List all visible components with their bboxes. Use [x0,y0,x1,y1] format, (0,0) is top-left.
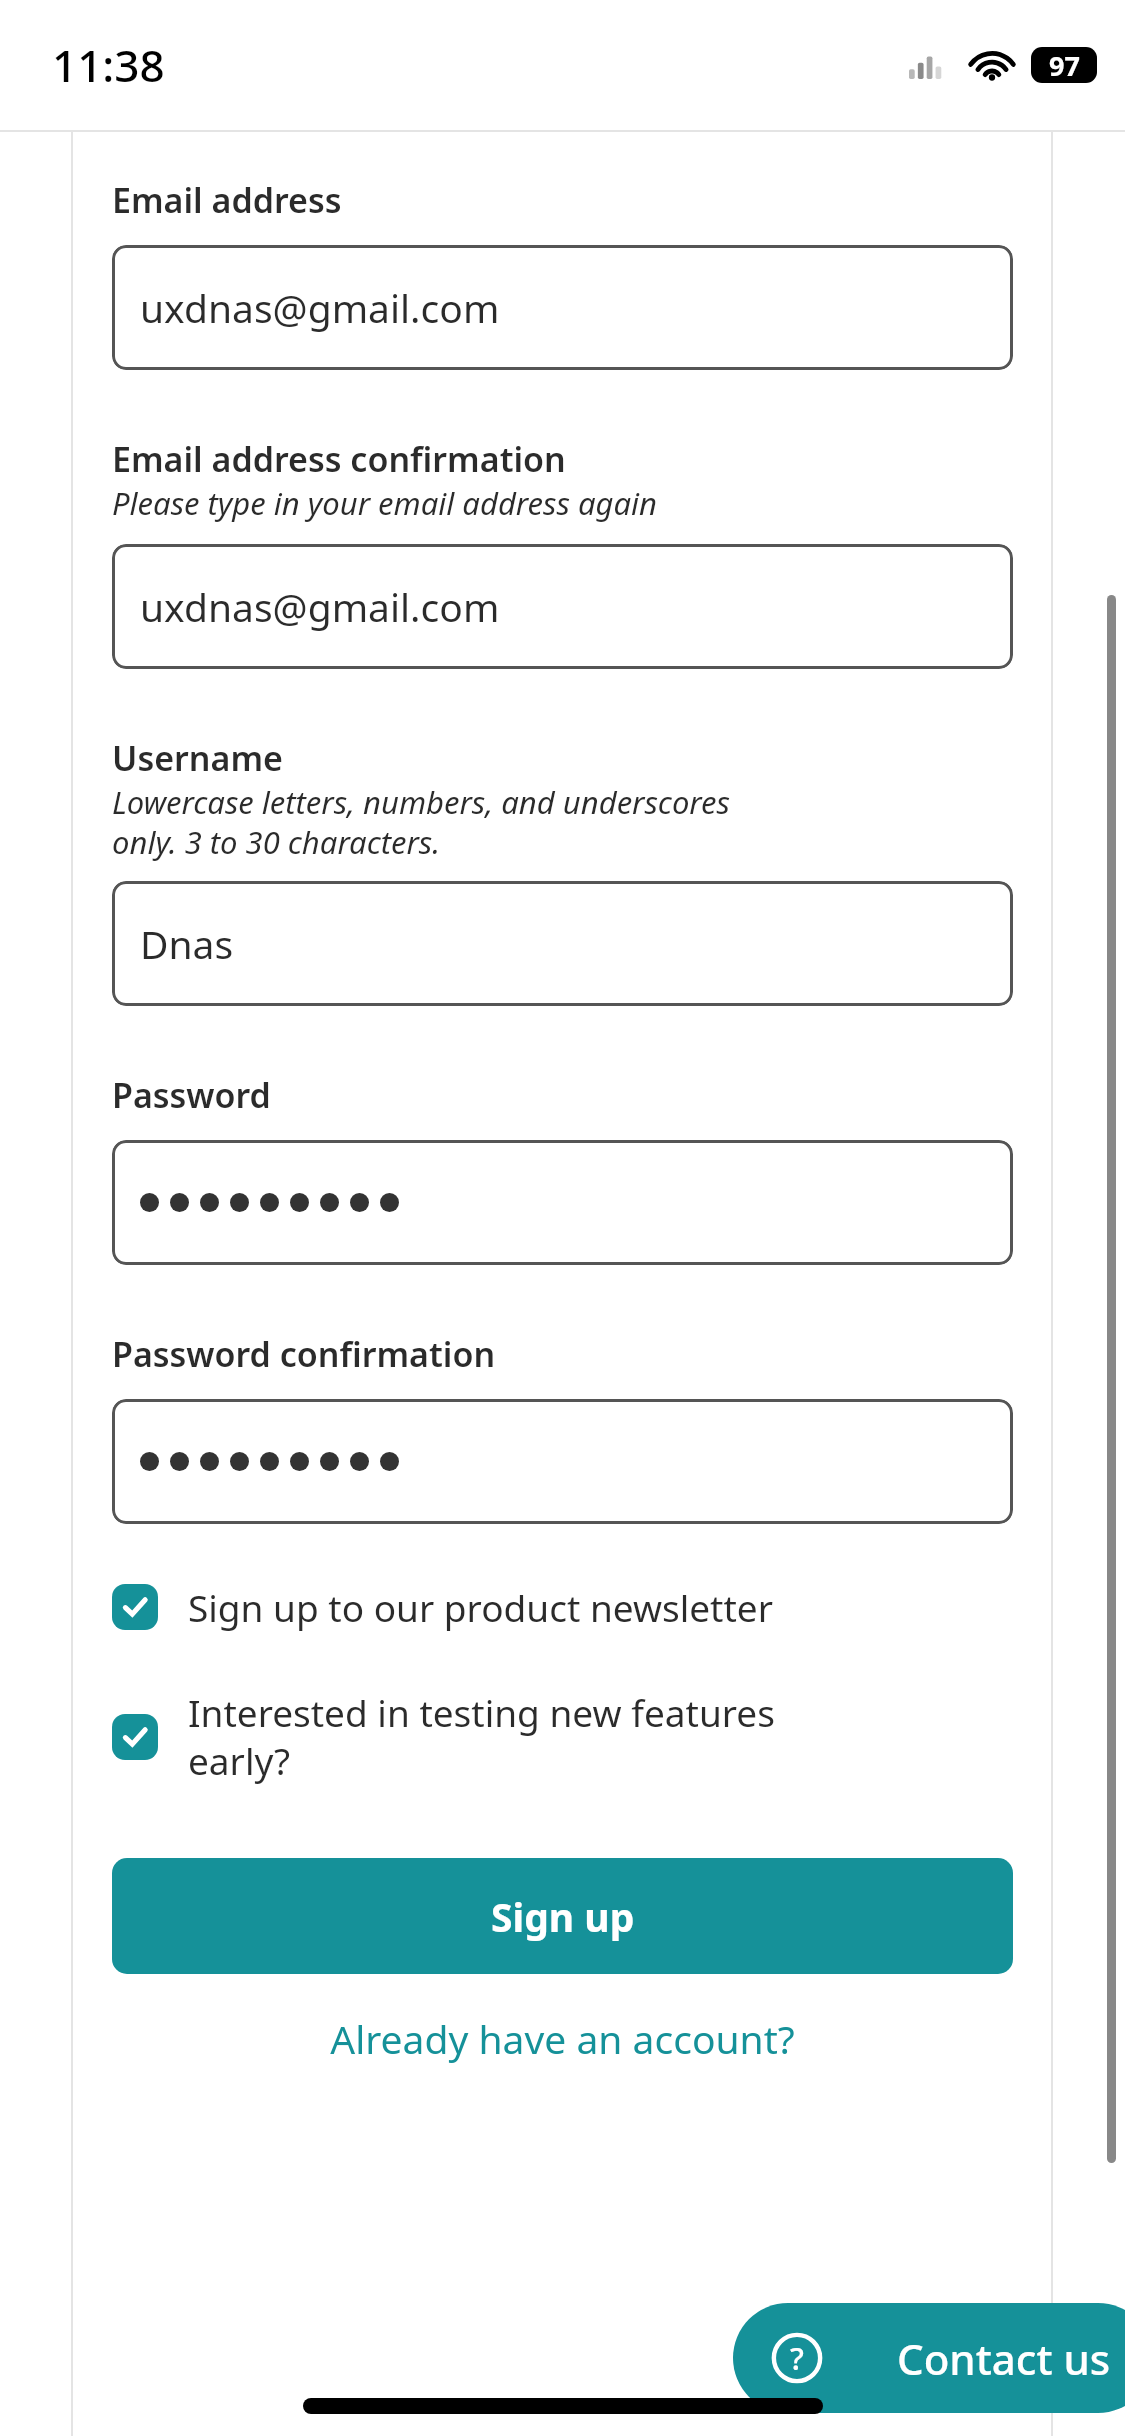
staticText: Email address [112,177,342,223]
button[interactable]: Sign up [112,1858,1013,1974]
staticText: Password [112,1072,271,1118]
staticText: Interested in testing new features early… [188,1687,775,1786]
staticText: Email address confirmation [112,436,566,482]
staticText: 97 [1049,47,1080,83]
staticText: Username [112,735,283,781]
staticText: ? [790,2337,804,2379]
staticText: Sign up [491,1890,635,1943]
button[interactable]: Sign up to our product newsletter [112,1582,1013,1632]
button[interactable] [112,1399,1013,1524]
staticText: Contact us [897,2330,1111,2387]
button[interactable]: ? [733,2303,1125,2413]
staticText: uxdnas@gmail.com [140,580,500,633]
staticText: Already have an account? [330,2012,795,2065]
staticText: 11:38 [52,35,165,95]
button[interactable]: Already have an account? [112,2012,1013,2065]
staticText: Please type in your email address again [112,482,658,524]
button[interactable]: uxdnas@gmail.com [112,245,1013,370]
button[interactable]: Interested in testing new features early… [112,1687,1013,1786]
staticText: Lowercase letters, numbers, and undersco… [112,781,730,863]
staticText: Password confirmation [112,1331,496,1377]
staticText: Dnas [140,917,234,970]
staticText: Sign up to our product newsletter [188,1582,773,1632]
button[interactable]: uxdnas@gmail.com [112,544,1013,669]
staticText: uxdnas@gmail.com [140,281,500,334]
button[interactable] [112,1140,1013,1265]
button[interactable]: Dnas [112,881,1013,1006]
